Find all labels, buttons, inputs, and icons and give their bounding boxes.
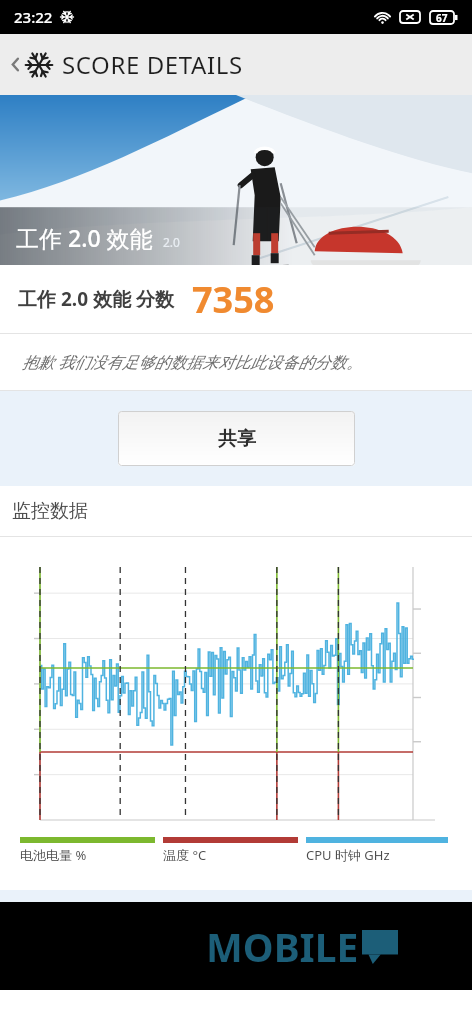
staticText: 工作 2.0 效能 分数 [18,286,174,312]
staticText: CPU 时钟 GHz [306,846,390,864]
other: Back [7,56,24,73]
staticText: 温度 °C [163,846,207,864]
staticText: 23:22 [14,7,53,27]
staticText: 监控数据 [12,499,88,523]
staticText: 67 [436,11,448,25]
staticText: 工作 2.0 效能 [16,222,153,253]
staticText: MOBILE [206,920,359,973]
staticText: 电池电量 % [20,846,87,864]
staticText: 抱歉 我们没有足够的数据来对比此设备的分数。 [22,351,363,373]
staticText: 2.0 [163,234,180,250]
staticText: SCORE DETAILS [62,48,243,81]
button[interactable]: Back [0,34,472,95]
button[interactable]: 共享 [118,411,355,466]
staticText: 共享 [218,427,256,451]
staticText: 7358 [192,275,275,324]
